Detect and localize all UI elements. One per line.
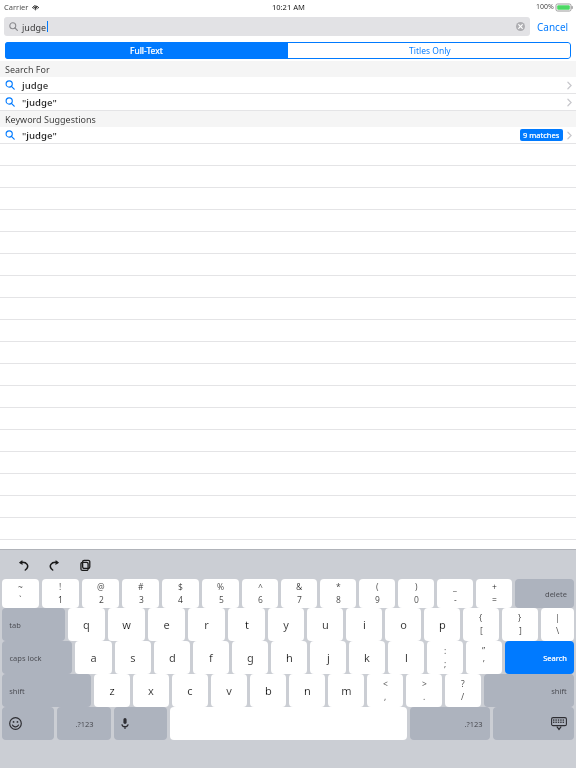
button[interactable]: judge	[4, 17, 530, 36]
staticText: 0	[414, 594, 419, 606]
button[interactable]: w	[108, 608, 145, 641]
button[interactable]: e	[148, 608, 185, 641]
button[interactable]: a	[75, 641, 112, 674]
staticText: [	[480, 625, 483, 637]
staticText: "judge"	[22, 96, 57, 109]
staticText: a	[90, 650, 97, 665]
staticText: Full-Text	[130, 45, 163, 57]
staticText: shift	[9, 686, 25, 696]
button[interactable]: b	[250, 674, 286, 707]
staticText: 6	[258, 594, 263, 606]
staticText: .	[423, 691, 426, 703]
button[interactable]: Paste	[74, 554, 96, 576]
button[interactable]: :	[427, 641, 463, 674]
button[interactable]: @	[82, 579, 119, 608]
button[interactable]: y	[268, 608, 304, 641]
button[interactable]: caps lock	[2, 641, 72, 674]
button[interactable]: Emoji	[2, 707, 54, 740]
button[interactable]: Cancel	[530, 20, 576, 34]
staticText: ?	[461, 678, 465, 690]
staticText: }	[518, 612, 522, 624]
staticText: 2	[99, 594, 104, 606]
button[interactable]: j	[310, 641, 346, 674]
button[interactable]: Hide keyboard	[493, 707, 574, 740]
button[interactable]: s	[115, 641, 151, 674]
button[interactable]: Clear text	[516, 22, 525, 31]
button[interactable]: +	[476, 579, 512, 608]
button[interactable]: judge	[0, 77, 576, 94]
button[interactable]: {	[463, 608, 499, 641]
button[interactable]: .?123	[57, 707, 111, 740]
button[interactable]: t	[228, 608, 265, 641]
button[interactable]: q	[68, 608, 105, 641]
staticText: judge	[22, 79, 49, 92]
button[interactable]: n	[289, 674, 325, 707]
button[interactable]: r	[188, 608, 225, 641]
staticText: "judge"	[22, 129, 57, 142]
button[interactable]: tab	[2, 608, 65, 641]
button[interactable]: "judge"	[0, 127, 576, 144]
staticText: m	[341, 683, 352, 698]
button[interactable]: m	[328, 674, 364, 707]
button[interactable]: ~	[2, 579, 39, 608]
staticText: h	[286, 650, 293, 665]
button[interactable]: k	[349, 641, 385, 674]
button[interactable]: }	[502, 608, 538, 641]
button[interactable]: .?123	[410, 707, 490, 740]
button[interactable]: #	[122, 579, 159, 608]
staticText: Cancel	[537, 20, 569, 34]
staticText: |	[555, 612, 560, 624]
staticText: delete	[545, 589, 567, 599]
button[interactable]: >	[406, 674, 442, 707]
button[interactable]: p	[424, 608, 460, 641]
button[interactable]: shift	[484, 674, 574, 707]
button[interactable]: i	[346, 608, 382, 641]
staticText: 5	[219, 594, 224, 606]
button[interactable]: |	[541, 608, 574, 641]
button[interactable]: c	[172, 674, 208, 707]
button[interactable]: g	[232, 641, 268, 674]
button[interactable]: v	[211, 674, 247, 707]
staticText: 3	[139, 594, 144, 606]
button[interactable]: &	[281, 579, 317, 608]
button[interactable]: Redo	[43, 554, 65, 576]
button[interactable]: _	[437, 579, 473, 608]
staticText: #	[138, 581, 144, 593]
button[interactable]: f	[193, 641, 229, 674]
staticText: (	[376, 581, 379, 593]
button[interactable]: ^	[242, 579, 278, 608]
button[interactable]: Dictation	[114, 707, 167, 740]
button[interactable]: Titles Only	[288, 42, 571, 59]
button[interactable]: o	[385, 608, 421, 641]
button[interactable]: "judge"	[0, 94, 576, 111]
button[interactable]: ?	[445, 674, 481, 707]
button[interactable]: u	[307, 608, 343, 641]
button[interactable]: Undo	[12, 554, 34, 576]
button[interactable]: h	[271, 641, 307, 674]
button[interactable]: ”	[466, 641, 502, 674]
button[interactable]: x	[133, 674, 169, 707]
button[interactable]: d	[154, 641, 190, 674]
button[interactable]: (	[359, 579, 395, 608]
button[interactable]: )	[398, 579, 434, 608]
staticText: g	[247, 650, 254, 665]
button[interactable]: shift	[2, 674, 91, 707]
staticText: Search For	[5, 63, 50, 75]
button[interactable]: !	[42, 579, 79, 608]
staticText: 9 matches	[523, 130, 560, 140]
staticText: b	[265, 683, 272, 698]
button[interactable]: *	[320, 579, 356, 608]
staticText: Keyword Suggestions	[5, 113, 96, 125]
staticText: ’	[483, 658, 485, 670]
button[interactable]: Full-Text	[5, 42, 287, 59]
button[interactable]: %	[202, 579, 239, 608]
staticText: o	[400, 617, 407, 632]
button[interactable]: <	[367, 674, 403, 707]
button[interactable]: $	[162, 579, 199, 608]
button[interactable]: delete	[515, 579, 574, 608]
button[interactable]: Search	[505, 641, 574, 674]
button[interactable]: l	[388, 641, 424, 674]
button[interactable]: z	[94, 674, 130, 707]
staticText: 10:21 AM	[272, 2, 305, 12]
